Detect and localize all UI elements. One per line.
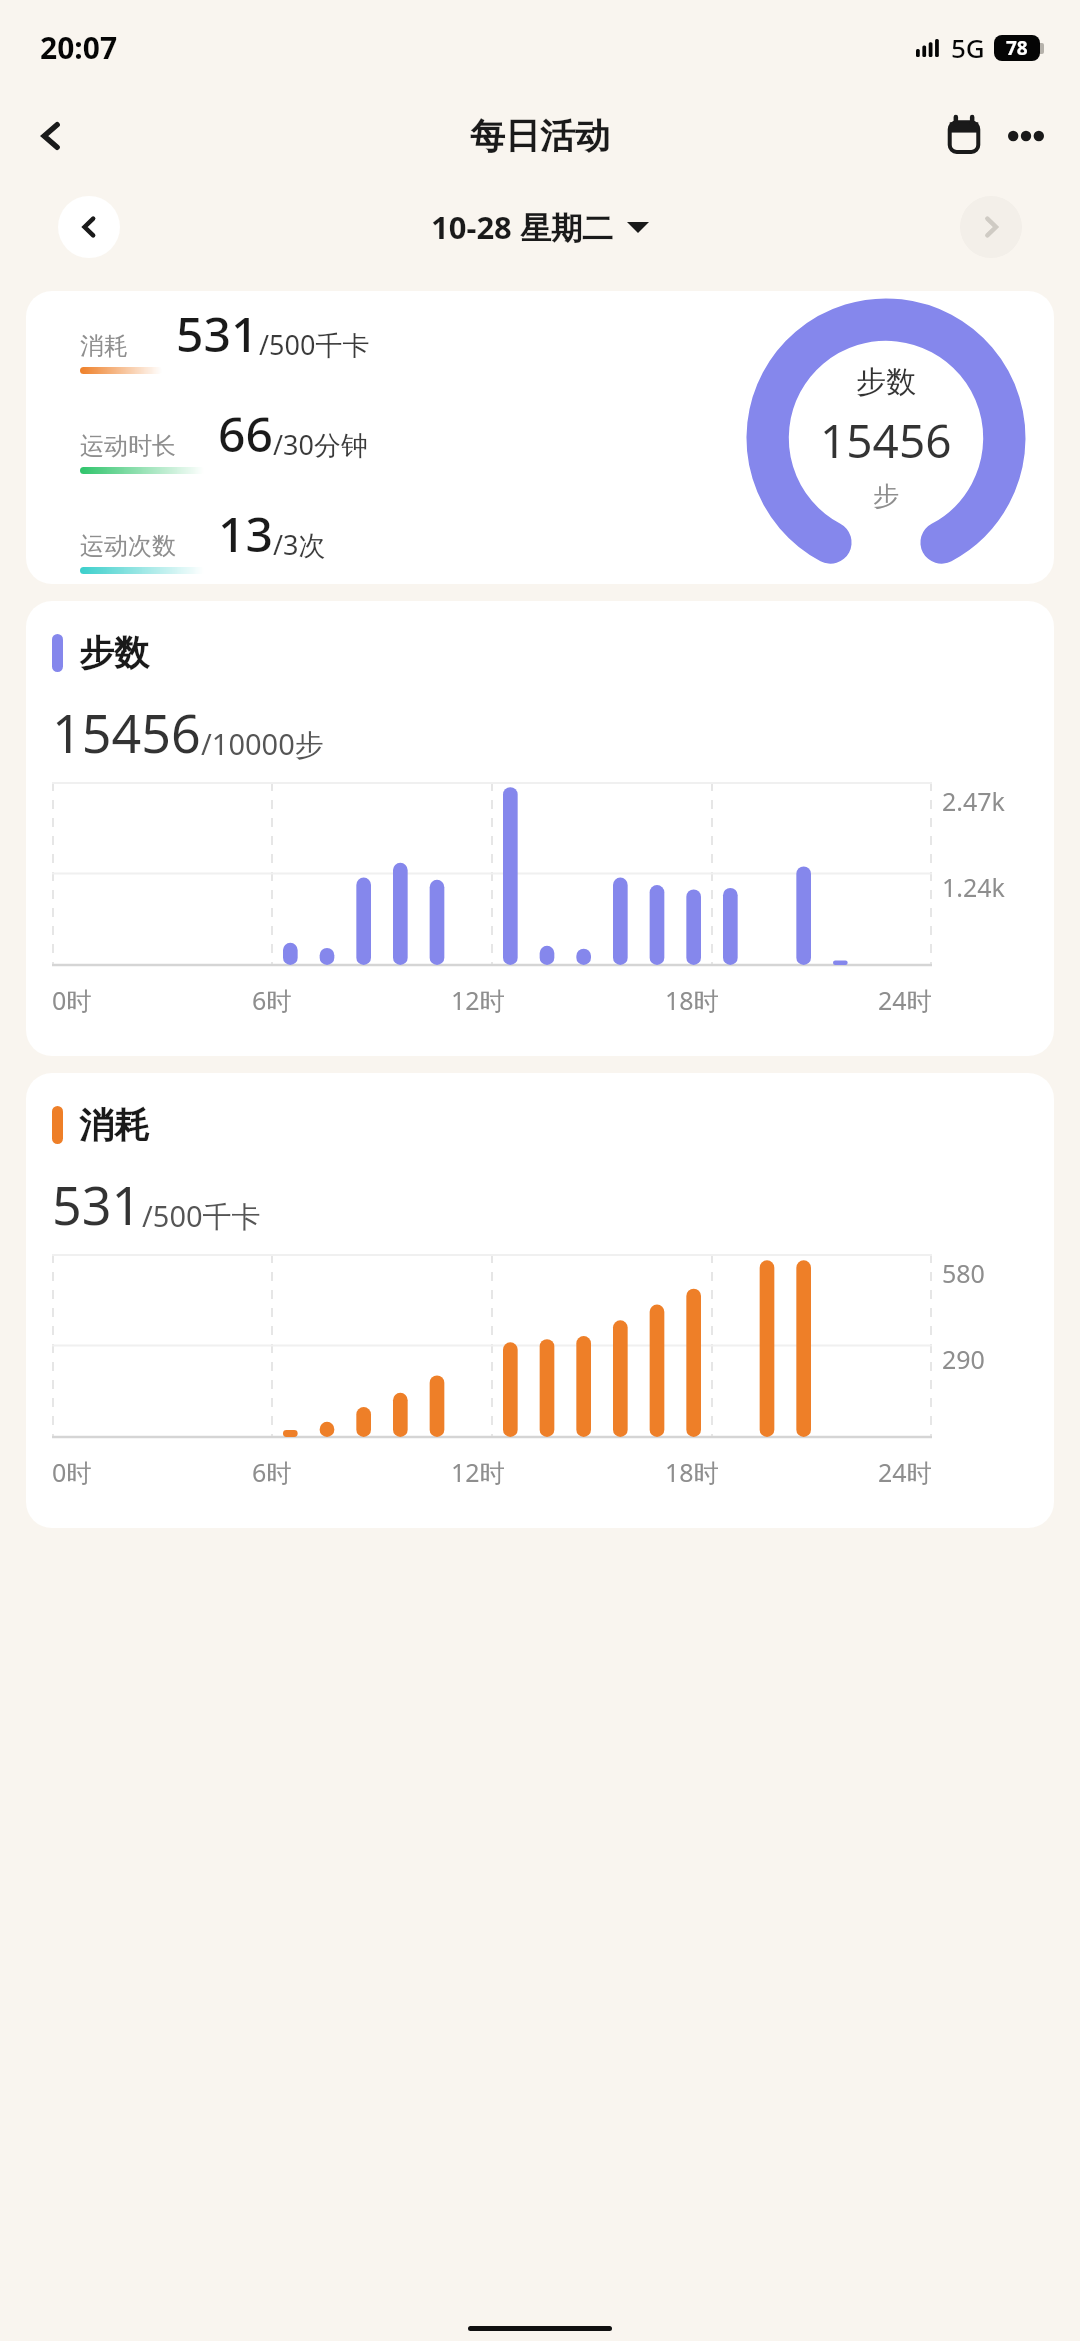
staticText: /3次 [273, 526, 326, 563]
staticText: 15456 [52, 697, 201, 768]
button[interactable]: More options [998, 108, 1054, 164]
staticText: 20:07 [40, 27, 118, 68]
staticText: 每日活动 [470, 114, 610, 158]
staticText: 290 [942, 1342, 985, 1376]
staticText: 18时 [665, 983, 719, 1017]
staticText: 0时 [52, 983, 92, 1017]
staticText: 12时 [451, 983, 505, 1017]
button[interactable]: Back [22, 107, 80, 165]
staticText: 531 [52, 1169, 142, 1240]
button[interactable]: Next day [960, 196, 1022, 258]
staticText: 6时 [252, 1455, 292, 1489]
staticText: 1.24k [942, 870, 1005, 904]
staticText: 18时 [665, 1455, 719, 1489]
staticText: 531 [176, 301, 259, 366]
staticText: 步 [873, 480, 899, 513]
staticText: 消耗 [79, 1103, 149, 1147]
staticText: 2.47k [942, 784, 1005, 818]
staticText: /500千卡 [142, 1196, 261, 1236]
staticText: 步数 [856, 363, 916, 401]
button[interactable]: 消耗 [26, 291, 1054, 584]
staticText: 10-28 星期二 [431, 206, 613, 248]
staticText: /30分钟 [273, 426, 368, 463]
button[interactable]: 消耗 [26, 1073, 1054, 1528]
staticText: /500千卡 [259, 326, 370, 363]
staticText: 6时 [252, 983, 292, 1017]
staticText: 78 [1006, 35, 1028, 61]
staticText: 运动时长 [80, 431, 176, 461]
button[interactable]: 10-28 星期二 [431, 206, 649, 248]
button[interactable]: Calendar [936, 108, 992, 164]
staticText: 步数 [79, 631, 149, 675]
staticText: 580 [942, 1256, 985, 1290]
staticText: 13 [218, 501, 273, 566]
staticText: 5G [951, 30, 985, 65]
button[interactable]: 步数 [26, 601, 1054, 1056]
staticText: 运动次数 [80, 531, 176, 561]
staticText: 消耗 [80, 331, 128, 361]
staticText: 15456 [820, 409, 952, 472]
staticText: /10000步 [201, 724, 324, 764]
staticText: 12时 [451, 1455, 505, 1489]
button[interactable]: Previous day [58, 196, 120, 258]
staticText: 24时 [878, 1455, 932, 1489]
staticText: 0时 [52, 1455, 92, 1489]
staticText: 66 [218, 401, 273, 466]
staticText: 24时 [878, 983, 932, 1017]
